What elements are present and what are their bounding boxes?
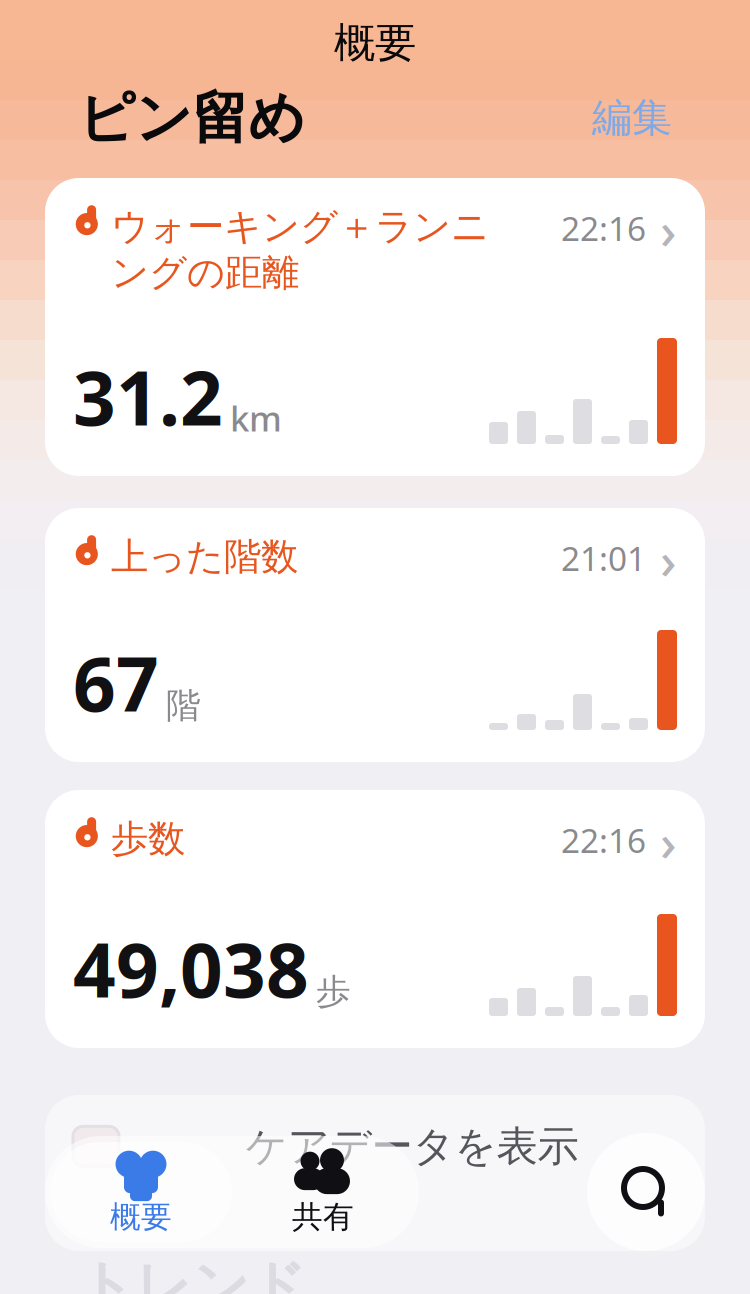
staticText: トレンド [78, 1252, 306, 1294]
staticText: 22:16 [561, 206, 646, 250]
staticText: › [660, 808, 677, 875]
staticText: 概要 [110, 1198, 172, 1236]
button[interactable]: 共有 [232, 1142, 414, 1242]
staticText: 上った階数 [111, 534, 298, 580]
staticText: 階 [166, 684, 201, 727]
staticText: 概要 [334, 18, 416, 68]
staticText: 49,038 [73, 919, 309, 1018]
staticText: 67 [73, 633, 159, 732]
staticText: ウォーキング＋ランニングの距離 [111, 204, 489, 296]
staticText: ピン留め [78, 84, 305, 152]
button[interactable]: ウォーキング＋ランニングの距離 [45, 178, 705, 476]
button[interactable]: 概要 [50, 1142, 232, 1242]
staticText: 21:01 [561, 536, 646, 580]
staticText: 31.2 [73, 347, 223, 446]
staticText: › [660, 196, 677, 263]
staticText: ケアデータを表示 [245, 1121, 578, 1172]
button[interactable]: 歩数 [45, 790, 705, 1048]
staticText: 歩数 [111, 816, 185, 862]
staticText: 22:16 [561, 818, 646, 862]
staticText: km [230, 395, 282, 441]
staticText: 編集 [592, 93, 672, 142]
button[interactable]: 上った階数 [45, 508, 705, 762]
button[interactable]: 編集 [592, 93, 672, 142]
staticText: 歩 [316, 970, 351, 1013]
staticText: › [660, 526, 677, 593]
button[interactable]: 検索 [587, 1133, 705, 1251]
staticText: 共有 [292, 1198, 354, 1236]
